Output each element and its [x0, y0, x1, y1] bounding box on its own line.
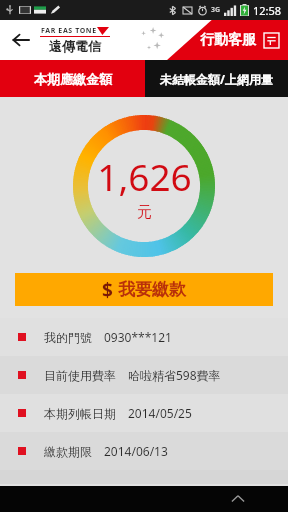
- staticText: 我要繳款: [118, 279, 186, 300]
- staticText: 目前使用費率: [44, 368, 116, 383]
- button[interactable]: 我的門號: [0, 318, 288, 356]
- staticText: 本期列帳日期: [44, 406, 116, 421]
- button[interactable]: 目前使用費率: [0, 356, 288, 394]
- staticText: 未結帳金額/上網用量: [160, 71, 273, 87]
- button[interactable]: Expand: [226, 487, 250, 511]
- button[interactable]: 繳款期限: [0, 432, 288, 470]
- button[interactable]: 行動客服: [200, 31, 280, 49]
- staticText: FAR EAS TONE: [41, 26, 97, 36]
- staticText: 3G: [211, 5, 221, 15]
- staticText: 元: [137, 203, 152, 222]
- staticText: 我的門號: [44, 330, 92, 345]
- other: Menu: [262, 31, 280, 49]
- staticText: 遠傳電信: [49, 38, 101, 54]
- staticText: 本期應繳金額: [34, 71, 112, 87]
- button[interactable]: 本期列帳日期: [0, 394, 288, 432]
- staticText: 12:58: [253, 3, 282, 18]
- button[interactable]: $: [15, 273, 273, 306]
- staticText: 哈啦精省598費率: [128, 367, 221, 383]
- button[interactable]: 本期應繳金額: [0, 60, 145, 97]
- staticText: 2014/05/25: [128, 405, 192, 421]
- button[interactable]: 未結帳金額/上網用量: [145, 60, 288, 97]
- staticText: 行動客服: [200, 31, 256, 49]
- staticText: 0930***121: [104, 329, 172, 345]
- staticText: 繳款期限: [44, 444, 92, 459]
- staticText: 2014/06/13: [104, 443, 168, 459]
- button[interactable]: Back: [8, 27, 34, 53]
- staticText: 1,626: [97, 151, 192, 201]
- staticText: $: [102, 277, 113, 303]
